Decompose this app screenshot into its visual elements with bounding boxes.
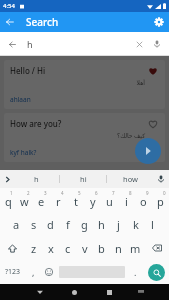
button[interactable]: a — [8, 212, 25, 236]
button[interactable]: Back — [3, 35, 21, 53]
button[interactable]: j — [110, 212, 127, 236]
staticText: kyf halk? — [10, 148, 37, 157]
staticText: m — [130, 241, 141, 256]
button[interactable]: Back — [22, 284, 57, 300]
button[interactable]: hi — [60, 170, 106, 188]
staticText: How are you? — [10, 118, 147, 129]
button[interactable]: , — [25, 260, 41, 284]
button[interactable]: Search — [148, 264, 165, 281]
staticText: 1 — [10, 190, 13, 196]
button[interactable]: how — [107, 170, 153, 188]
staticText: Hello / Hi — [10, 65, 147, 76]
staticText: hi — [80, 174, 87, 184]
button[interactable]: Expand suggestions — [0, 170, 14, 188]
staticText: 6 — [95, 190, 98, 196]
button[interactable]: v — [76, 236, 93, 260]
button[interactable]: k — [127, 212, 144, 236]
staticText: b — [98, 241, 105, 256]
button[interactable]: b — [93, 236, 110, 260]
button[interactable]: f — [59, 212, 76, 236]
button[interactable]: s — [25, 212, 42, 236]
staticText: Search — [26, 15, 59, 29]
button[interactable]: x — [42, 236, 59, 260]
button[interactable]: Back — [0, 12, 20, 32]
button[interactable]: Clear — [130, 35, 148, 53]
button[interactable]: 7 — [101, 188, 118, 212]
staticText: 9 — [146, 190, 149, 196]
button[interactable]: Recents — [92, 284, 127, 300]
staticText: g — [81, 217, 88, 232]
button[interactable]: 6 — [84, 188, 101, 212]
button[interactable]: Voice input — [153, 170, 169, 188]
button[interactable]: How are you? — [4, 113, 165, 162]
staticText: 8 — [129, 190, 132, 196]
staticText: z — [31, 241, 37, 256]
staticText: w — [20, 194, 29, 209]
button[interactable]: m — [127, 236, 144, 260]
staticText: . — [134, 266, 137, 278]
button[interactable]: d — [42, 212, 59, 236]
staticText: v — [82, 241, 88, 256]
button[interactable]: n — [110, 236, 127, 260]
staticText: o — [140, 194, 147, 209]
staticText: a — [13, 217, 20, 232]
button[interactable]: 0 — [152, 188, 169, 212]
button[interactable]: 1 — [0, 188, 16, 212]
button[interactable]: 3 — [33, 188, 50, 212]
staticText: t — [74, 194, 78, 209]
staticText: 7 — [112, 190, 115, 196]
staticText: h — [98, 217, 105, 232]
staticText: e — [38, 194, 45, 209]
button[interactable]: . — [127, 260, 143, 284]
button[interactable]: 5 — [67, 188, 84, 212]
button[interactable]: h — [93, 212, 110, 236]
staticText: 2 — [27, 190, 30, 196]
staticText: 5 — [78, 190, 81, 196]
button[interactable]: 8 — [118, 188, 135, 212]
staticText: h — [27, 38, 33, 50]
staticText: l — [151, 217, 154, 232]
staticText: d — [47, 217, 54, 232]
staticText: k — [133, 217, 139, 232]
button[interactable]: c — [59, 236, 76, 260]
staticText: ahlaan — [10, 95, 31, 104]
button[interactable]: 4 — [50, 188, 67, 212]
button[interactable]: Favorite — [147, 65, 159, 77]
staticText: 4 — [61, 190, 64, 196]
staticText: s — [31, 217, 37, 232]
staticText: u — [106, 194, 113, 209]
button[interactable]: Settings — [149, 12, 169, 32]
staticText: h — [34, 174, 39, 184]
button[interactable]: Shift — [0, 236, 25, 260]
button[interactable]: Voice search — [148, 35, 166, 53]
staticText: f — [66, 217, 70, 232]
button[interactable]: Play — [135, 138, 161, 164]
staticText: r — [56, 194, 61, 209]
staticText: n — [115, 241, 122, 256]
button[interactable]: Favorite — [147, 118, 159, 130]
staticText: كيف حالك؟ — [10, 132, 145, 140]
button[interactable]: h — [14, 170, 59, 188]
staticText: 4:54 — [3, 2, 15, 10]
button[interactable]: Home — [57, 284, 92, 300]
button[interactable]: 9 — [135, 188, 152, 212]
button[interactable]: Switch keyboard — [127, 284, 155, 300]
staticText: i — [125, 194, 128, 209]
staticText: , — [32, 266, 35, 278]
staticText: how — [123, 174, 138, 184]
staticText: 3 — [44, 190, 47, 196]
button[interactable]: Emoji — [41, 260, 57, 284]
button[interactable]: Hello / Hi — [4, 60, 165, 109]
button[interactable]: g — [76, 212, 93, 236]
staticText: ?123 — [5, 267, 21, 277]
staticText: j — [117, 217, 120, 232]
button[interactable]: 2 — [16, 188, 33, 212]
button[interactable]: ?123 — [0, 260, 25, 284]
staticText: أهلا — [10, 79, 145, 86]
staticText: c — [65, 241, 71, 256]
staticText: p — [157, 194, 164, 209]
button[interactable]: l — [144, 212, 161, 236]
button[interactable]: Backspace — [144, 236, 169, 260]
button[interactable]: z — [25, 236, 42, 260]
